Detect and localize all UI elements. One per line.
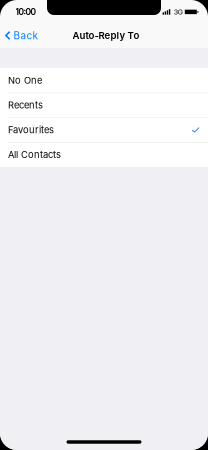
staticText: Back <box>14 29 38 42</box>
button[interactable]: All Contacts <box>0 142 208 167</box>
button[interactable]: Recents <box>0 93 208 117</box>
staticText: Favourites <box>8 124 54 135</box>
staticText: Recents <box>8 99 43 111</box>
button[interactable]: Back <box>0 21 44 46</box>
staticText: 10:00 <box>15 7 35 17</box>
staticText: 3G <box>174 7 183 16</box>
staticText: Auto-Reply To <box>72 30 139 41</box>
button[interactable]: No One <box>0 68 208 93</box>
staticText: No One <box>8 75 42 86</box>
staticText: All Contacts <box>8 149 61 160</box>
button[interactable]: Favourites <box>0 117 208 142</box>
